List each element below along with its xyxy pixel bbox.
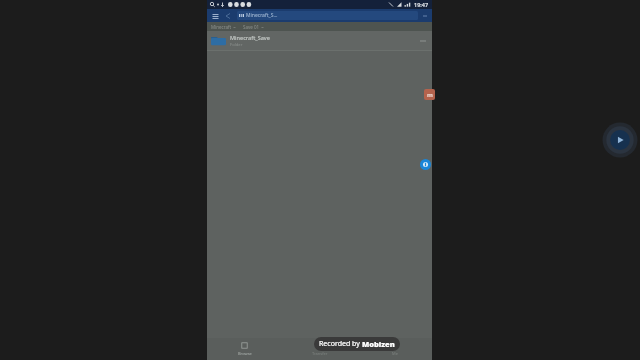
staticText: m: [427, 91, 433, 99]
button[interactable]: Item options: [418, 34, 428, 48]
button[interactable]: Mobizen floating button: [424, 89, 435, 100]
staticText: 19:47: [414, 1, 429, 8]
button[interactable]: Minecraft_Save: [207, 31, 432, 50]
staticText: Save 01: [243, 24, 260, 30]
staticText: Transfer: [312, 351, 328, 356]
button[interactable]: Open navigation drawer: [210, 11, 220, 21]
button[interactable]: Me: [357, 338, 432, 360]
staticText: Minecraft_Save: [230, 34, 270, 41]
button[interactable]: Play video: [601, 121, 639, 159]
button[interactable]: Transfer: [282, 338, 357, 360]
button[interactable]: Minecraft_S…: [237, 11, 418, 20]
staticText: Browse: [238, 351, 252, 356]
button[interactable]: Save 01: [242, 24, 265, 30]
staticText: Mobizen: [362, 339, 395, 349]
button[interactable]: More options: [420, 11, 429, 20]
staticText: Recorded by: [319, 339, 362, 349]
staticText: Minecraft_S…: [246, 12, 278, 19]
button[interactable]: Browse: [207, 338, 282, 360]
staticText: Me: [392, 351, 398, 356]
button[interactable]: Assistant bubble: [420, 159, 431, 170]
staticText: Folder: [230, 42, 243, 48]
staticText: Minecraft: [211, 24, 232, 30]
button[interactable]: Minecraft: [210, 24, 237, 30]
